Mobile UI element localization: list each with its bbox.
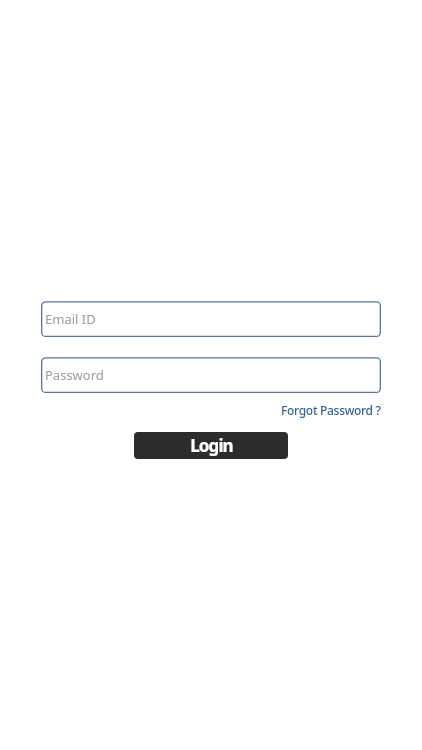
button[interactable]: Forgot Password ? [281,402,381,418]
staticText: Password [45,366,104,384]
button[interactable]: Login [134,432,288,459]
staticText: Login [190,434,233,457]
staticText: Email ID [45,310,96,328]
staticText: Forgot Password ? [281,402,381,418]
button[interactable]: Password [41,357,381,393]
button[interactable]: Email ID [41,301,381,337]
